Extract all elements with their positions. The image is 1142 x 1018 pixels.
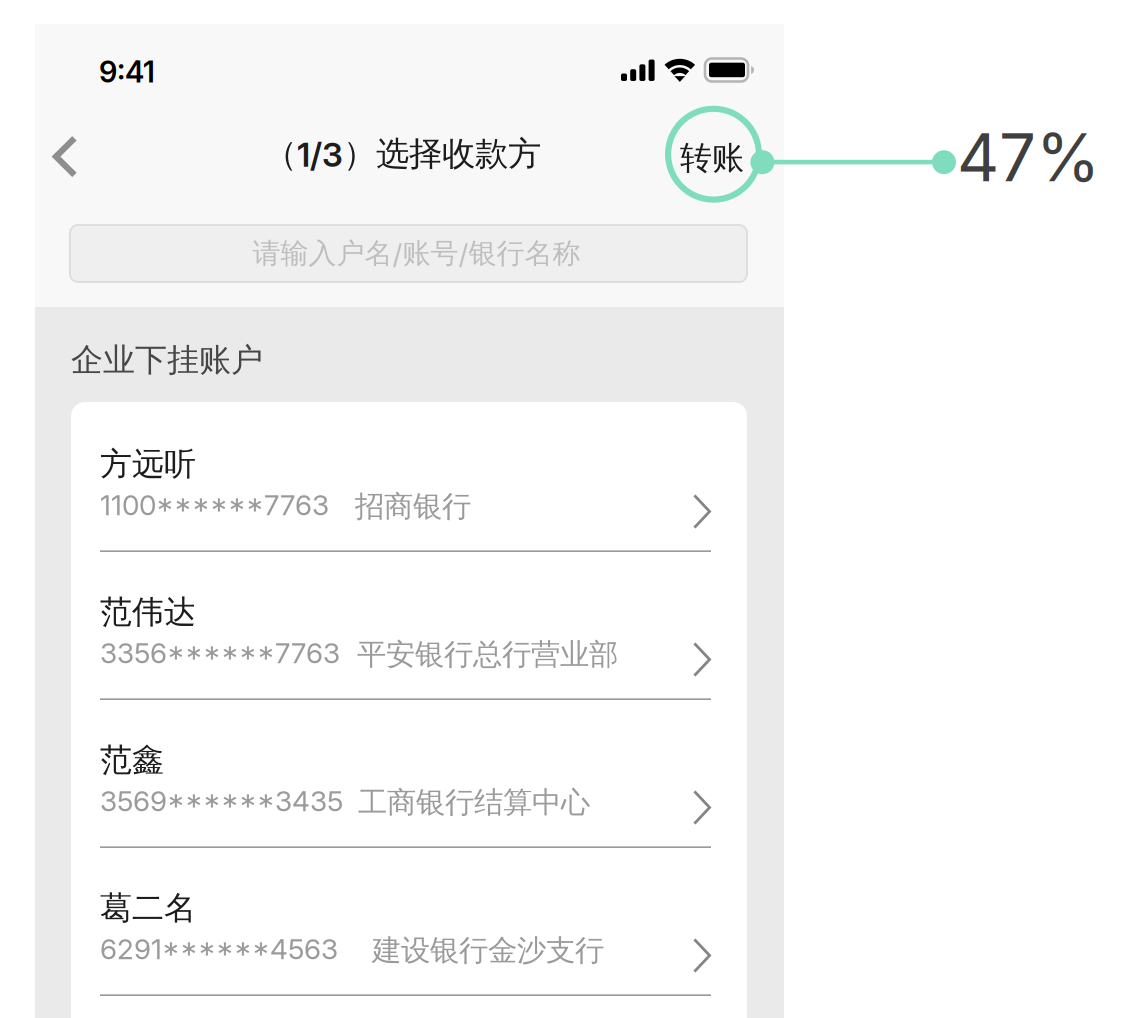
staticText: 企业下挂账户 — [71, 340, 263, 380]
button[interactable]: 转账 — [669, 132, 755, 184]
button[interactable]: 葛二名 — [71, 846, 747, 994]
staticText: 平安银行总行营业部 — [357, 636, 618, 673]
staticText: 47% — [957, 118, 1100, 197]
button[interactable]: 方远听 — [71, 402, 747, 550]
staticText: 请输入户名/账号/银行名称 — [252, 236, 580, 271]
staticText: 方远听 — [100, 444, 196, 484]
staticText: 3356******7763 — [100, 636, 340, 670]
staticText: 工商银行结算中心 — [358, 784, 590, 821]
staticText: 范鑫 — [100, 740, 164, 780]
staticText: （1/3）选择收款方 — [264, 133, 541, 175]
staticText: 6291******4563 — [100, 932, 338, 966]
staticText: 3569******3435 — [100, 784, 343, 818]
button[interactable]: 请输入户名/账号/银行名称 — [70, 225, 747, 282]
staticText: 转账 — [680, 138, 744, 178]
staticText: 招商银行 — [355, 488, 471, 525]
staticText: 1100******7763 — [100, 488, 329, 522]
button[interactable]: 范鑫 — [71, 698, 747, 846]
button[interactable]: Back — [32, 124, 98, 190]
button[interactable]: 范伟达 — [71, 550, 747, 698]
staticText: 葛二名 — [100, 888, 196, 928]
staticText: 9:41 — [99, 54, 155, 89]
staticText: 范伟达 — [100, 592, 196, 632]
staticText: 建设银行金沙支行 — [372, 932, 604, 969]
